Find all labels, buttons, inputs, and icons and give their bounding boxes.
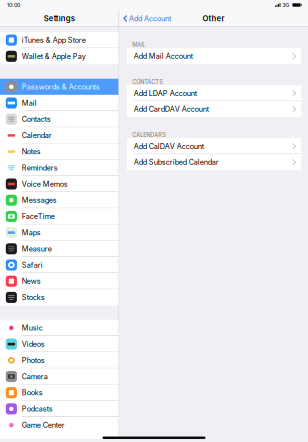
- staticText: Safari: [22, 261, 43, 269]
- staticText: Game Center: [22, 421, 65, 429]
- staticText: Voice Memos: [22, 180, 68, 188]
- staticText: Music: [22, 323, 43, 332]
- button[interactable]: Add Account: [119, 10, 171, 27]
- staticText: Contacts: [22, 115, 51, 124]
- staticText: MAIL: [132, 41, 145, 48]
- staticText: Notes: [22, 147, 41, 156]
- staticText: Stocks: [22, 293, 45, 302]
- button[interactable]: Mail: [0, 95, 119, 111]
- button[interactable]: Camera: [0, 368, 119, 385]
- button[interactable]: Contacts: [0, 111, 119, 127]
- staticText: FaceTime: [22, 212, 55, 221]
- button[interactable]: News: [0, 273, 119, 289]
- staticText: Messages: [22, 196, 57, 205]
- button[interactable]: Add CalDAV Account: [127, 138, 301, 154]
- button[interactable]: Passwords & Accounts: [0, 79, 119, 95]
- button[interactable]: Reminders: [0, 160, 119, 176]
- button[interactable]: Measure: [0, 241, 119, 257]
- button[interactable]: Wallet & Apple Pay: [0, 48, 119, 64]
- button[interactable]: Calendar: [0, 127, 119, 143]
- staticText: Photos: [22, 356, 45, 365]
- button[interactable]: Voice Memos: [0, 176, 119, 192]
- staticText: Add LDAP Account: [134, 89, 197, 98]
- button[interactable]: FaceTime: [0, 208, 119, 224]
- staticText: Add Subscribed Calendar: [134, 158, 219, 166]
- staticText: Maps: [22, 228, 41, 237]
- button[interactable]: Notes: [0, 143, 119, 160]
- staticText: Videos: [22, 340, 45, 348]
- button[interactable]: Add CardDAV Account: [127, 101, 301, 117]
- staticText: Calendar: [22, 131, 52, 140]
- staticText: 3G: [282, 2, 289, 8]
- staticText: iTunes & App Store: [22, 36, 86, 44]
- staticText: Add Mail Account: [134, 52, 193, 60]
- button[interactable]: Add LDAP Account: [127, 85, 301, 101]
- button[interactable]: Add Mail Account: [127, 48, 301, 64]
- staticText: Podcasts: [22, 404, 53, 413]
- staticText: Camera: [22, 372, 48, 381]
- button[interactable]: Podcasts: [0, 401, 119, 417]
- button[interactable]: Add Subscribed Calendar: [127, 154, 301, 170]
- staticText: Settings: [44, 14, 75, 23]
- button[interactable]: Videos: [0, 336, 119, 352]
- staticText: CONTACTS: [132, 79, 163, 85]
- staticText: Add Account: [129, 14, 171, 23]
- staticText: CALENDARS: [132, 132, 166, 138]
- staticText: Add CalDAV Account: [134, 142, 204, 151]
- staticText: Passwords & Accounts: [22, 82, 100, 91]
- button[interactable]: Photos: [0, 352, 119, 368]
- button[interactable]: Safari: [0, 257, 119, 273]
- button[interactable]: iTunes & App Store: [0, 32, 119, 48]
- button[interactable]: Maps: [0, 224, 119, 241]
- staticText: Other: [203, 14, 225, 23]
- staticText: Measure: [22, 244, 52, 253]
- button[interactable]: Music: [0, 320, 119, 336]
- staticText: Mail: [22, 99, 37, 107]
- staticText: Books: [22, 388, 43, 397]
- button[interactable]: Books: [0, 385, 119, 401]
- button[interactable]: Messages: [0, 192, 119, 208]
- staticText: Wallet & Apple Pay: [22, 52, 86, 61]
- staticText: 10:00: [7, 2, 20, 8]
- staticText: News: [22, 277, 41, 286]
- button[interactable]: Stocks: [0, 289, 119, 305]
- button[interactable]: Game Center: [0, 417, 119, 433]
- staticText: Reminders: [22, 163, 58, 172]
- staticText: Add CardDAV Account: [134, 105, 209, 113]
